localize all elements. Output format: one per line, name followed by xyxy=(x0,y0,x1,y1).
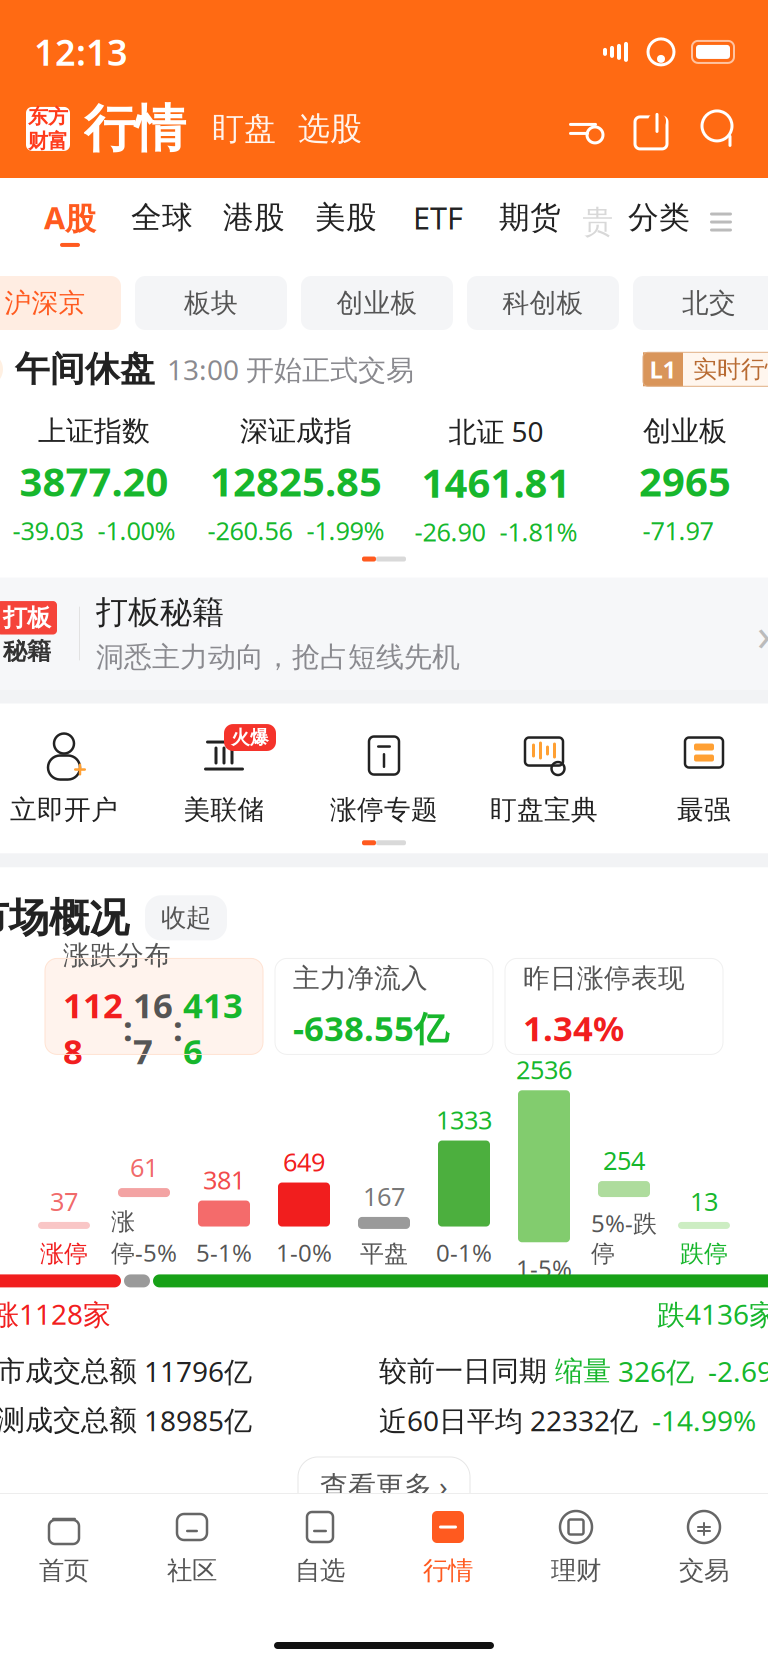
button[interactable]: 科创板 xyxy=(467,276,619,330)
button[interactable]: 交易 xyxy=(640,1506,768,1586)
button[interactable]: 更多频道 xyxy=(698,199,744,245)
staticText: 跌4136家 xyxy=(657,1295,768,1333)
staticText: 上证指数 xyxy=(38,414,150,448)
staticText: 1333 xyxy=(436,1103,492,1136)
staticText: 13 xyxy=(690,1184,718,1218)
staticText: 167 xyxy=(363,1179,405,1213)
staticText: 跌停 xyxy=(680,1239,728,1268)
button[interactable]: 火爆 xyxy=(144,729,304,826)
staticText: 0-1% xyxy=(436,1236,492,1268)
staticText: 1-5% xyxy=(516,1252,572,1284)
staticText: ETF xyxy=(413,197,463,238)
staticText: 主力净流入 xyxy=(293,962,428,995)
button[interactable]: 创业板 xyxy=(301,276,453,330)
staticText: -1.00% xyxy=(97,513,175,547)
staticText: 12:13 xyxy=(34,28,128,76)
button[interactable]: 涨停专题 xyxy=(304,729,464,826)
button[interactable]: A股 xyxy=(44,197,96,247)
staticText: 贵 xyxy=(582,203,613,241)
staticText: L1 xyxy=(649,353,676,385)
button[interactable]: 立即开户 xyxy=(0,729,144,826)
button[interactable]: 分享 xyxy=(606,106,674,152)
staticText: 两市成交总额 xyxy=(0,1354,137,1388)
staticText: 首页 xyxy=(39,1555,89,1586)
staticText: 381 xyxy=(203,1163,245,1196)
staticText: A股 xyxy=(44,197,96,238)
staticText: 61 xyxy=(130,1150,158,1184)
button[interactable]: 涨跌分布 xyxy=(45,958,263,1054)
staticText: 深证成指 xyxy=(240,414,352,448)
button[interactable]: 期货 xyxy=(499,199,561,245)
button[interactable]: 社区 xyxy=(128,1506,256,1586)
staticText: 649 xyxy=(283,1145,325,1178)
button[interactable]: 收起 xyxy=(145,895,227,940)
button[interactable]: 自选 xyxy=(256,1506,384,1586)
staticText: 18985亿 xyxy=(137,1402,252,1439)
staticText: 盯盘 xyxy=(212,109,276,149)
staticText: 收起 xyxy=(161,902,211,933)
staticText: -260.56 xyxy=(207,513,292,547)
button[interactable]: 搜索 xyxy=(674,106,742,152)
button[interactable]: 港股 xyxy=(223,199,285,245)
staticText: 22332亿 xyxy=(523,1402,638,1439)
staticText: 37 xyxy=(50,1184,78,1218)
staticText: -39.03 xyxy=(12,513,83,547)
staticText: 美股 xyxy=(315,199,377,236)
staticText: : xyxy=(123,1005,133,1051)
staticText: 立即开户 xyxy=(10,793,118,826)
staticText: 涨停 xyxy=(40,1239,88,1268)
staticText: 打板 xyxy=(3,603,51,632)
staticText: 1128 xyxy=(63,982,123,1074)
staticText: -1.99% xyxy=(306,513,384,547)
staticText: 昨日涨停表现 xyxy=(523,962,685,995)
staticText: 1.34% xyxy=(523,1005,624,1051)
button[interactable]: 分类 xyxy=(628,199,690,245)
button[interactable]: 沪深京 xyxy=(0,276,121,330)
button[interactable]: 首页 xyxy=(0,1506,128,1586)
button[interactable]: 主力净流入 xyxy=(275,958,493,1054)
staticText: 行情 xyxy=(84,98,186,160)
staticText: 5-1% xyxy=(196,1236,252,1268)
staticText: 167 xyxy=(133,982,173,1074)
button[interactable]: 行情 xyxy=(384,1506,512,1586)
button[interactable]: 板块 xyxy=(135,276,287,330)
staticText: -2.69% xyxy=(694,1353,768,1390)
button[interactable]: 美股 xyxy=(315,199,377,245)
button[interactable]: 盯盘宝典 xyxy=(464,729,624,826)
staticText: 涨停专题 xyxy=(330,793,438,826)
staticText: 秘籍 xyxy=(3,636,51,666)
button[interactable]: 查看更多 › xyxy=(298,1457,470,1514)
staticText: › xyxy=(757,603,768,664)
button[interactable]: 全球 xyxy=(131,199,193,245)
staticText: 港股 xyxy=(223,199,285,236)
staticText: 美联储 xyxy=(183,793,264,826)
staticText: 326亿 xyxy=(611,1353,694,1390)
staticText: 自选 xyxy=(295,1555,345,1586)
staticText: 近60日平均 xyxy=(379,1402,523,1439)
staticText: -638.55亿 xyxy=(293,1005,449,1051)
staticText: -1.81% xyxy=(499,515,577,548)
staticText: 缩量 xyxy=(547,1354,611,1388)
button[interactable]: 北交 xyxy=(633,276,768,330)
staticText: 1461.81 xyxy=(421,456,570,509)
button[interactable]: 昨日涨停表现 xyxy=(505,958,723,1054)
staticText: 分类 xyxy=(628,199,690,236)
staticText: 5%-跌停 xyxy=(591,1207,657,1268)
staticText: 实时行情 xyxy=(693,355,768,384)
staticText: 创业板 xyxy=(643,414,727,448)
staticText: 12825.85 xyxy=(210,454,382,507)
staticText: 北证 50 xyxy=(448,413,543,450)
button[interactable]: 最强 xyxy=(624,729,768,826)
staticText: 期货 xyxy=(499,199,561,236)
staticText: 北交 xyxy=(682,287,736,319)
button[interactable]: 打板 xyxy=(0,577,768,689)
staticText: 涨跌分布 xyxy=(63,939,171,972)
staticText: 理财 xyxy=(551,1555,601,1586)
button[interactable]: 理财 xyxy=(512,1506,640,1586)
staticText: 板块 xyxy=(184,287,238,319)
staticText: 预测成交总额 xyxy=(0,1403,137,1438)
button[interactable]: ETF xyxy=(413,197,463,247)
button[interactable]: 设置 xyxy=(560,106,606,152)
staticText: 最强 xyxy=(677,793,731,826)
